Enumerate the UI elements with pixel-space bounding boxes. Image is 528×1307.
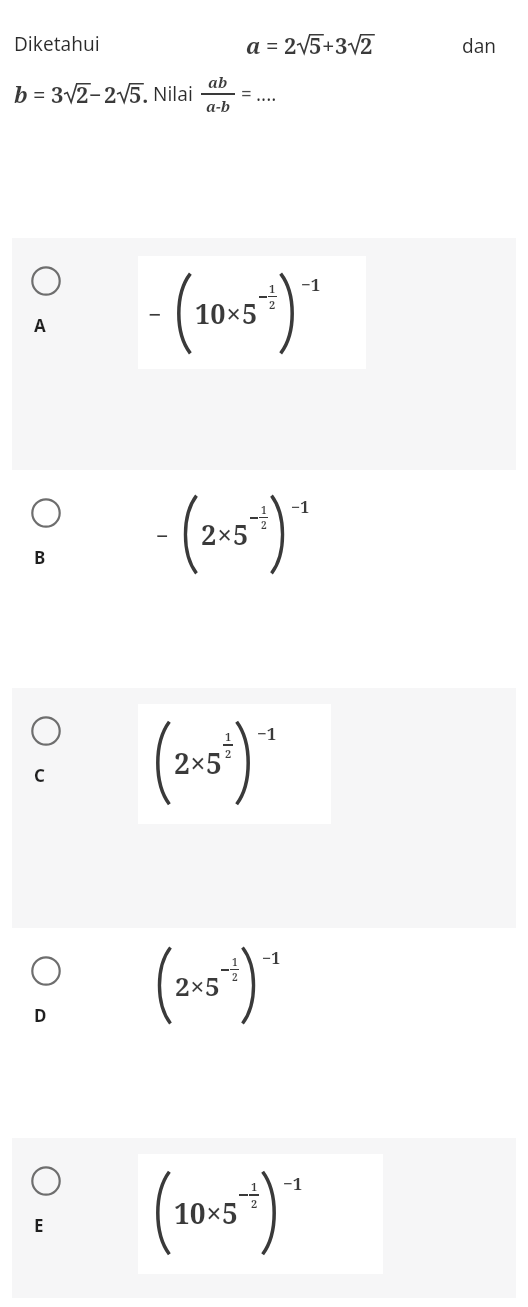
staticText: 2 bbox=[201, 516, 217, 553]
staticText: 2 bbox=[284, 30, 297, 60]
staticText: −1 bbox=[257, 722, 277, 745]
staticText: 2 bbox=[175, 968, 190, 1003]
staticText: 2 bbox=[225, 746, 232, 761]
staticText: = bbox=[266, 30, 279, 60]
staticText: + bbox=[322, 30, 335, 60]
staticText: 5 bbox=[206, 744, 222, 782]
staticText: Diketahui bbox=[14, 31, 100, 57]
staticText: × bbox=[226, 295, 242, 332]
button[interactable]: Pilih opsi B bbox=[12, 470, 516, 688]
staticText: − bbox=[156, 520, 169, 550]
button[interactable]: Pilih opsi A bbox=[12, 238, 516, 470]
staticText: 1 bbox=[269, 281, 276, 296]
staticText: 2 bbox=[76, 79, 89, 108]
staticText: 1 bbox=[225, 729, 232, 744]
staticText: A bbox=[34, 314, 46, 337]
staticText: × bbox=[206, 1194, 222, 1232]
staticText: B bbox=[34, 546, 46, 569]
staticText: 1 bbox=[251, 1179, 258, 1194]
staticText: −1 bbox=[283, 1172, 303, 1195]
staticText: 10 bbox=[195, 295, 226, 332]
staticText: − bbox=[89, 79, 102, 109]
staticText: − bbox=[148, 298, 162, 329]
staticText: .... bbox=[256, 81, 277, 107]
staticText: 2 bbox=[174, 744, 190, 782]
button[interactable]: Pilih opsi C bbox=[31, 716, 61, 746]
staticText: dan bbox=[462, 33, 497, 59]
staticText: 2 bbox=[360, 30, 373, 59]
button[interactable]: Pilih opsi B bbox=[31, 498, 61, 528]
button[interactable]: Pilih opsi A bbox=[31, 266, 61, 296]
staticText: 1 bbox=[261, 503, 267, 517]
staticText: ab bbox=[208, 72, 228, 92]
staticText: = bbox=[241, 81, 252, 107]
button[interactable]: Pilih opsi E bbox=[12, 1138, 516, 1298]
staticText: 5 bbox=[222, 1194, 238, 1232]
staticText: D bbox=[34, 1004, 47, 1027]
staticText: a bbox=[246, 30, 261, 60]
staticText: −1 bbox=[291, 496, 310, 518]
staticText: 5 bbox=[309, 30, 322, 59]
staticText: × bbox=[190, 744, 206, 782]
staticText: . bbox=[142, 79, 149, 109]
staticText: 1 bbox=[232, 955, 238, 969]
staticText: 5 bbox=[242, 295, 258, 332]
staticText: 2 bbox=[251, 1196, 258, 1211]
staticText: 10 bbox=[174, 1194, 206, 1232]
staticText: Nilai bbox=[153, 81, 193, 107]
staticText: × bbox=[190, 968, 205, 1003]
staticText: b bbox=[14, 79, 28, 109]
button[interactable]: Pilih opsi D bbox=[12, 928, 516, 1138]
staticText: 5 bbox=[129, 79, 142, 108]
staticText: −1 bbox=[262, 947, 281, 969]
button[interactable]: Pilih opsi C bbox=[12, 688, 516, 928]
staticText: 2 bbox=[261, 518, 267, 532]
staticText: 5 bbox=[233, 516, 249, 553]
staticText: = bbox=[33, 79, 46, 109]
staticText: 2 bbox=[104, 79, 117, 109]
staticText: 2 bbox=[232, 970, 238, 984]
staticText: 5 bbox=[205, 968, 220, 1003]
staticText: C bbox=[34, 764, 45, 787]
staticText: −1 bbox=[301, 273, 321, 296]
button[interactable]: Pilih opsi E bbox=[31, 1166, 61, 1196]
staticText: 3 bbox=[51, 79, 64, 109]
staticText: 3 bbox=[335, 30, 348, 60]
staticText: 2 bbox=[269, 297, 276, 312]
staticText: × bbox=[217, 516, 233, 553]
staticText: a−b bbox=[206, 96, 230, 116]
staticText: E bbox=[34, 1214, 44, 1237]
button[interactable]: Pilih opsi D bbox=[31, 956, 61, 986]
